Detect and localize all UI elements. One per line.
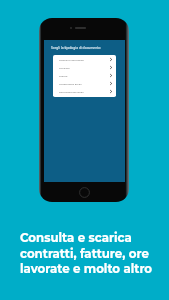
button[interactable]: Fatture — [53, 71, 116, 79]
staticText: Cedolini e documenti — [59, 58, 109, 61]
staticText: Certificazioni fiscali — [59, 82, 109, 85]
staticText: Scegli la tipologia di documento — [51, 45, 101, 49]
staticText: Documenti personali — [59, 90, 109, 93]
button[interactable]: Documenti personali — [53, 87, 116, 95]
button[interactable]: Certificazioni fiscali — [53, 79, 116, 87]
button[interactable]: Cedolini e documenti — [53, 55, 116, 63]
staticText: Consulta e scarica contratti, fatture, o… — [20, 231, 160, 276]
button[interactable]: Home — [79, 187, 90, 198]
staticText: Fatture — [59, 74, 109, 77]
staticText: Contratti — [59, 66, 109, 69]
button[interactable]: Contratti — [53, 63, 116, 71]
